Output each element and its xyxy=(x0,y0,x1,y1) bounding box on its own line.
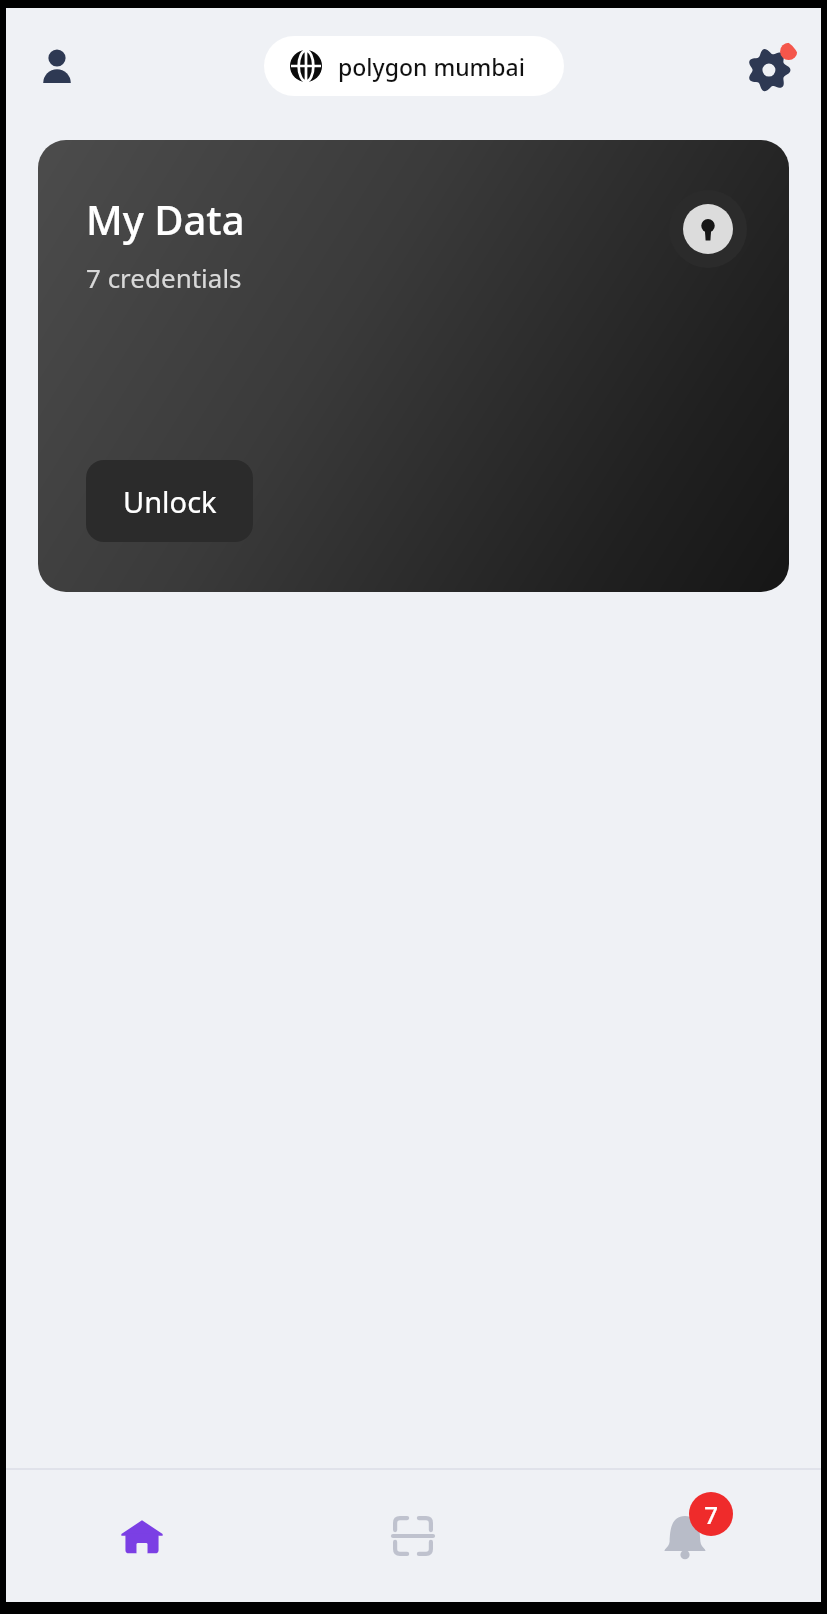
button[interactable]: polygon mumbai xyxy=(264,36,564,96)
button[interactable]: Locked xyxy=(669,190,747,268)
button[interactable]: Scan xyxy=(277,1470,549,1602)
button[interactable]: Settings xyxy=(741,37,801,97)
button[interactable]: Account xyxy=(28,38,86,96)
button[interactable]: Notifications xyxy=(549,1470,821,1602)
staticText: My Data xyxy=(86,192,245,246)
button[interactable]: My Data xyxy=(38,140,789,592)
button[interactable]: Unlock xyxy=(86,460,253,542)
staticText: Unlock xyxy=(123,482,217,521)
staticText: 7 xyxy=(704,1498,718,1531)
staticText: 7 credentials xyxy=(86,260,242,295)
staticText: polygon mumbai xyxy=(338,51,525,82)
button[interactable]: Home xyxy=(6,1470,277,1602)
